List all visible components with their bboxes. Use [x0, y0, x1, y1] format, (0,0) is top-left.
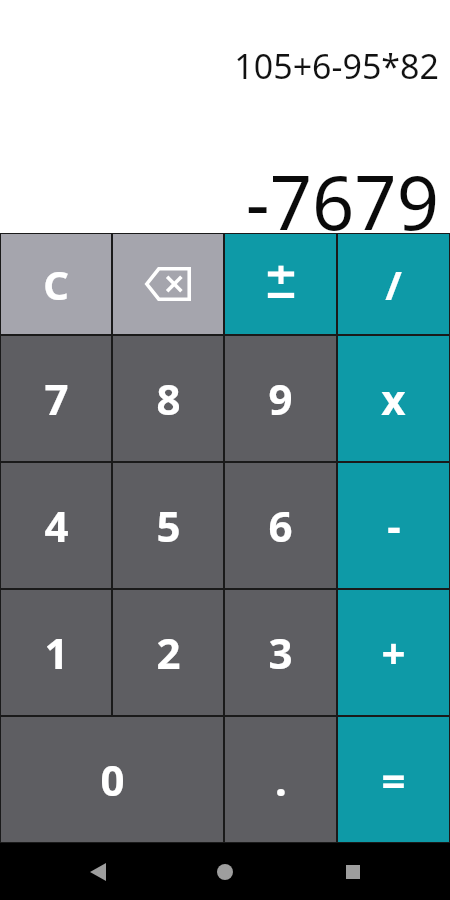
button[interactable]: Backspace	[113, 234, 223, 334]
button[interactable]: C	[1, 234, 111, 334]
button[interactable]: 7	[1, 336, 111, 461]
staticText: 8	[156, 370, 181, 427]
staticText: 0	[100, 751, 125, 808]
button[interactable]: 6	[225, 463, 336, 588]
button[interactable]: Plus minus	[225, 234, 336, 334]
button[interactable]: 0	[1, 717, 223, 842]
staticText: +	[381, 624, 406, 681]
staticText: 9	[268, 370, 293, 427]
staticText: 3	[268, 624, 293, 681]
staticText: /	[385, 257, 402, 311]
button[interactable]: .	[225, 717, 336, 842]
staticText: 4	[44, 497, 69, 554]
button[interactable]: 2	[113, 590, 223, 715]
staticText: -7679	[245, 151, 439, 233]
button[interactable]: 9	[225, 336, 336, 461]
button[interactable]: 5	[113, 463, 223, 588]
staticText: -	[387, 497, 401, 554]
button[interactable]: 4	[1, 463, 111, 588]
button[interactable]: Recent apps	[323, 843, 383, 900]
button[interactable]: x	[338, 336, 449, 461]
staticText: 2	[156, 624, 181, 681]
staticText: x	[381, 370, 406, 427]
button[interactable]: +	[338, 590, 449, 715]
button[interactable]: 8	[113, 336, 223, 461]
button[interactable]: =	[338, 717, 449, 842]
button[interactable]: Back	[68, 843, 128, 900]
staticText: C	[43, 257, 69, 311]
button[interactable]: -	[338, 463, 449, 588]
staticText: 6	[268, 497, 293, 554]
button[interactable]: Home	[195, 843, 255, 900]
button[interactable]: 1	[1, 590, 111, 715]
button[interactable]: /	[338, 234, 449, 334]
button[interactable]: 3	[225, 590, 336, 715]
staticText: 5	[156, 497, 181, 554]
staticText: .	[275, 751, 287, 808]
staticText: 7	[44, 370, 69, 427]
staticText: 1	[44, 624, 69, 681]
staticText: =	[381, 751, 406, 808]
staticText: 105+6-95*82	[234, 43, 439, 89]
